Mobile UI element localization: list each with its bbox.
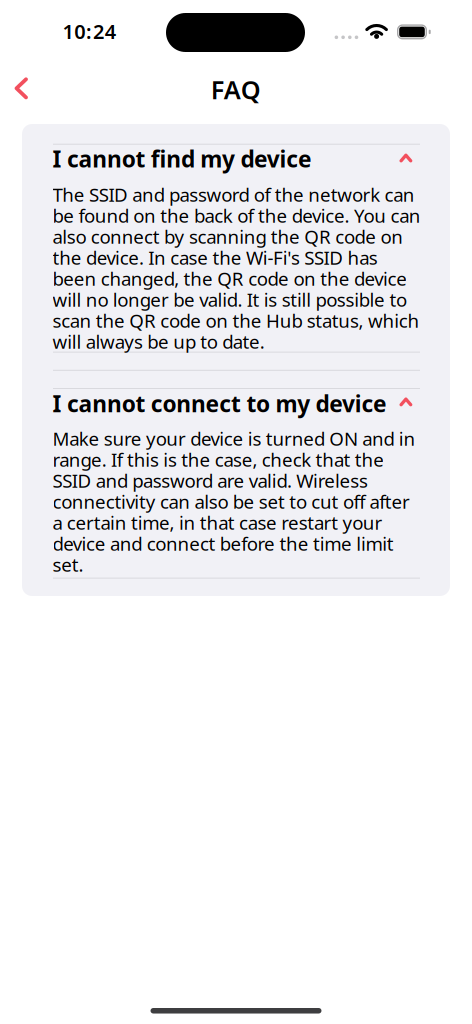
staticText: 10:24 [62, 18, 116, 45]
staticText: SSID and password are valid. Wireless [52, 468, 368, 493]
button[interactable]: I cannot find my device [53, 143, 420, 173]
staticText: connectivity can also be set to cut off … [52, 489, 410, 514]
staticText: I cannot connect to my device [52, 388, 387, 419]
button[interactable]: I cannot connect to my device [53, 388, 420, 418]
staticText: scan the QR code on the Hub status, whic… [52, 308, 419, 333]
staticText: been changed, the QR code on the device [52, 266, 407, 291]
staticText: will no longer be valid. It is still pos… [52, 287, 407, 312]
staticText: will always be up to date. [52, 329, 265, 354]
button[interactable]: Back [8, 72, 40, 104]
staticText: the device. In case the Wi-Fi's SSID has [52, 245, 378, 270]
staticText: The SSID and password of the network can [52, 182, 415, 207]
staticText: FAQ [211, 72, 261, 106]
staticText: set. [52, 552, 83, 577]
staticText: a certain time, in that case restart you… [52, 510, 382, 535]
staticText: device and connect before the time limit [52, 531, 394, 556]
staticText: range. If this is the case, check that t… [52, 447, 384, 472]
staticText: I cannot find my device [52, 144, 312, 174]
staticText: be found on the back of the device. You … [52, 203, 421, 228]
staticText: also connect by scanning the QR code on [52, 224, 403, 249]
staticText: Make sure your device is turned ON and i… [52, 426, 415, 451]
